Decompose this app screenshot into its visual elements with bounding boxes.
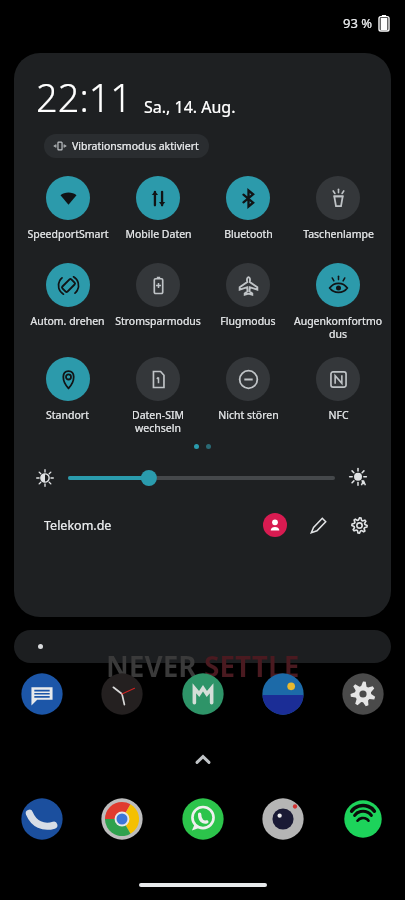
button[interactable]: Edit bbox=[309, 516, 328, 535]
button[interactable] bbox=[14, 630, 391, 663]
button[interactable] bbox=[70, 468, 333, 488]
button[interactable]: NFC bbox=[293, 357, 383, 422]
button[interactable]: Spotify bbox=[339, 795, 387, 843]
button[interactable]: WhatsApp bbox=[179, 795, 227, 843]
button[interactable]: User bbox=[263, 513, 287, 537]
button[interactable]: Mobile Daten bbox=[113, 176, 203, 241]
button[interactable]: Camera bbox=[259, 795, 307, 843]
button[interactable]: Settings bbox=[339, 670, 387, 718]
staticText: Sa., 14. Aug. bbox=[144, 96, 236, 118]
button[interactable]: Chrome bbox=[98, 795, 146, 843]
button[interactable]: Nicht stören bbox=[203, 357, 293, 422]
other: Auto brightness bbox=[349, 468, 369, 488]
staticText: Flugmodus bbox=[220, 314, 276, 328]
staticText: 22:11 bbox=[36, 71, 133, 123]
staticText: Augenkomfortmodus bbox=[293, 314, 383, 341]
button[interactable]: Daten-SIM wechseln bbox=[113, 357, 203, 435]
button[interactable]: Mi app bbox=[179, 670, 227, 718]
staticText: 93 % bbox=[343, 14, 373, 32]
button[interactable]: Weather bbox=[259, 670, 307, 718]
staticText: Autom. drehen bbox=[30, 314, 105, 328]
button[interactable]: Bluetooth bbox=[203, 176, 293, 241]
staticText: Nicht stören bbox=[218, 408, 279, 422]
staticText: Standort bbox=[46, 408, 89, 422]
button[interactable]: Messages bbox=[18, 670, 66, 718]
staticText: Mobile Daten bbox=[125, 227, 192, 241]
button[interactable]: Standort bbox=[22, 357, 113, 422]
staticText: NFC bbox=[328, 408, 349, 422]
staticText: Vibrationsmodus aktiviert bbox=[72, 139, 199, 153]
button[interactable]: Phone bbox=[18, 795, 66, 843]
button[interactable]: App drawer bbox=[193, 750, 213, 770]
staticText: Stromsparmodus bbox=[115, 314, 201, 328]
button[interactable]: Augenkomfortmodus bbox=[293, 263, 383, 341]
other: Low brightness bbox=[36, 469, 54, 487]
button[interactable]: Vibrationsmodus aktiviert bbox=[44, 134, 209, 158]
button[interactable]: Stromsparmodus bbox=[113, 263, 203, 328]
staticText: SpeedportSmart bbox=[27, 227, 109, 241]
button[interactable]: Taschenlampe bbox=[293, 176, 383, 241]
staticText: Taschenlampe bbox=[303, 227, 374, 241]
staticText: NEVER bbox=[106, 647, 204, 685]
button[interactable]: Flugmodus bbox=[203, 263, 293, 328]
staticText: Telekom.de bbox=[44, 517, 112, 534]
button[interactable]: Clock bbox=[98, 670, 146, 718]
button[interactable]: Settings bbox=[350, 516, 369, 535]
staticText: Daten-SIM wechseln bbox=[113, 408, 203, 435]
button[interactable]: SpeedportSmart bbox=[22, 176, 113, 241]
staticText: Bluetooth bbox=[224, 227, 273, 241]
button[interactable]: Autom. drehen bbox=[22, 263, 113, 328]
staticText: SETTLE bbox=[204, 647, 300, 685]
